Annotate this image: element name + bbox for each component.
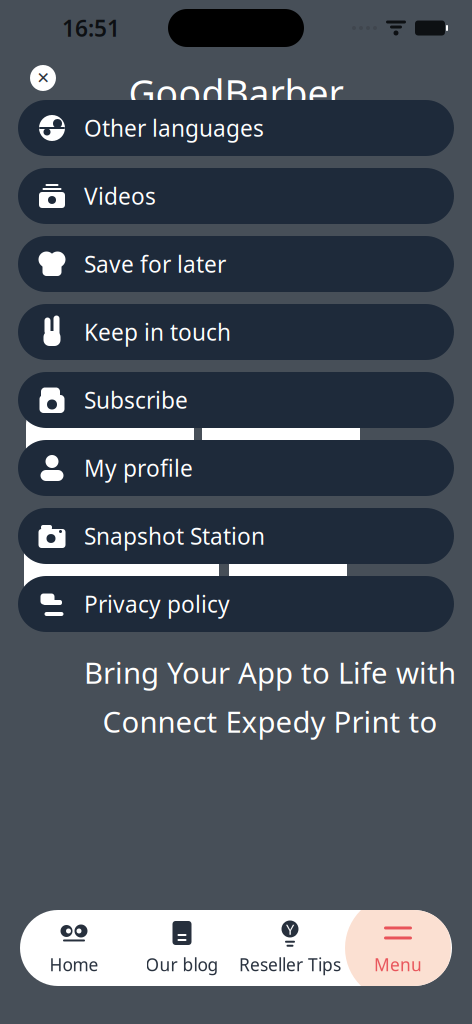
button[interactable]: Y	[236, 910, 344, 986]
staticText: Other languages	[84, 113, 264, 143]
staticText: Home	[49, 953, 98, 976]
staticText: Y	[286, 919, 294, 939]
button[interactable]: Home	[20, 910, 128, 986]
staticText: Privacy policy	[84, 589, 230, 619]
button[interactable]: Our blog	[128, 910, 236, 986]
button[interactable]: Save for later	[18, 236, 454, 292]
button[interactable]: Keep in touch	[18, 304, 454, 360]
button[interactable]: My profile	[18, 440, 454, 496]
button[interactable]: Privacy policy	[18, 576, 454, 632]
staticText: Subscribe	[84, 385, 188, 415]
button[interactable]: Snapshot Station	[18, 508, 454, 564]
button[interactable]: Other languages	[18, 100, 454, 156]
button[interactable]: Subscribe	[18, 372, 454, 428]
button[interactable]: Menu	[344, 910, 452, 986]
staticText: Bring Your App to Life with	[84, 653, 456, 692]
staticText: Save for later	[84, 249, 226, 279]
button[interactable]: Videos	[18, 168, 454, 224]
staticText: Reseller Tips	[239, 953, 341, 976]
staticText: GoodBarber	[128, 68, 343, 118]
staticText: ✕	[36, 69, 49, 87]
staticText: Menu	[374, 953, 422, 976]
staticText: Keep in touch	[84, 317, 231, 347]
staticText: Videos	[84, 181, 156, 211]
staticText: Snapshot Station	[84, 521, 265, 551]
button[interactable]: Close menu	[20, 56, 66, 100]
staticText: Connect Expedy Print to	[102, 702, 437, 741]
staticText: 16:51	[62, 13, 120, 43]
staticText: Our blog	[145, 953, 218, 976]
staticText: My profile	[84, 453, 193, 483]
